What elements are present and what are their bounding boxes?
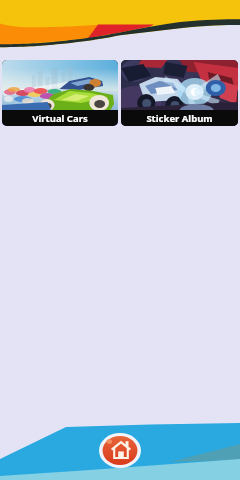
button[interactable]: Home [99,433,141,468]
staticText: Sticker Album [146,112,213,125]
button[interactable]: Sticker Album [121,60,238,126]
staticText: Virtual Cars [32,112,88,125]
button[interactable]: Virtual Cars [2,60,118,126]
